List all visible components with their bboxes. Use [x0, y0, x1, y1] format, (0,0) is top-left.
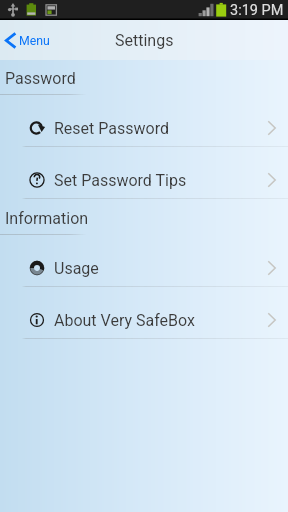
button[interactable]: Set Password Tips: [0, 147, 288, 199]
staticText: About Very SafeBox: [54, 311, 195, 330]
staticText: 3:19 PM: [230, 2, 284, 19]
button[interactable]: Usage: [0, 235, 288, 287]
staticText: Password: [5, 69, 76, 88]
staticText: Settings: [115, 31, 174, 50]
button[interactable]: Reset Password: [0, 95, 288, 147]
button[interactable]: About Very SafeBox: [0, 287, 288, 339]
staticText: Menu: [19, 34, 50, 48]
staticText: Reset Password: [54, 119, 169, 138]
staticText: Set Password Tips: [54, 171, 187, 190]
button[interactable]: Menu: [0, 33, 58, 48]
staticText: Usage: [54, 259, 99, 278]
staticText: Information: [5, 209, 89, 228]
